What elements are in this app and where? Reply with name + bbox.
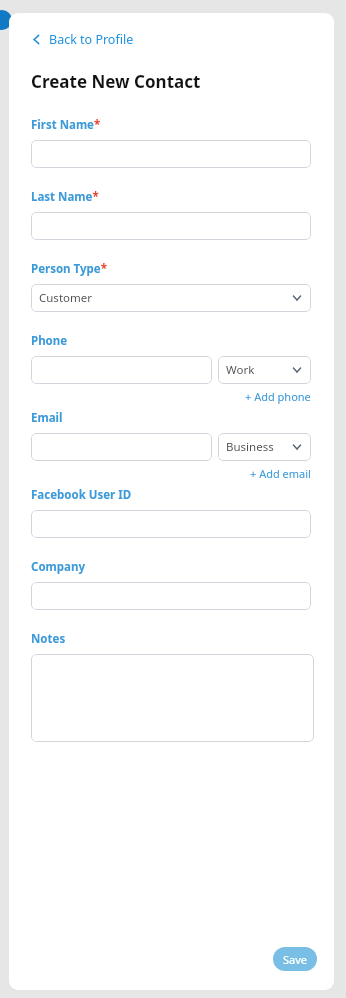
button[interactable]: Text input — [31, 654, 314, 742]
button[interactable]: Text input — [31, 212, 311, 240]
staticText: Business — [226, 439, 274, 455]
button[interactable]: + Add phone — [245, 388, 311, 405]
staticText: Email — [31, 410, 63, 426]
staticText: Person Type* — [31, 261, 107, 277]
staticText: Save — [283, 952, 308, 967]
staticText: Create New Contact — [31, 70, 201, 93]
button[interactable]: Back to Profile — [27, 27, 138, 52]
button[interactable]: Business — [218, 433, 311, 461]
button[interactable]: Text input — [31, 582, 311, 610]
button[interactable]: Text input — [31, 433, 212, 461]
staticText: Notes — [31, 631, 66, 647]
staticText: Facebook User ID — [31, 487, 132, 503]
staticText: + Add email — [250, 466, 311, 481]
staticText: Customer — [39, 290, 92, 306]
button[interactable]: Text input — [31, 140, 311, 168]
button[interactable]: Save — [273, 947, 317, 971]
button[interactable]: + Add email — [250, 465, 311, 482]
button[interactable]: Text input — [31, 510, 311, 538]
staticText: Company — [31, 559, 85, 575]
button[interactable]: Customer — [31, 284, 311, 312]
staticText: Last Name* — [31, 189, 99, 205]
staticText: + Add phone — [245, 389, 311, 404]
staticText: First Name* — [31, 117, 101, 133]
button[interactable]: Text input — [31, 356, 212, 384]
button[interactable]: Work — [218, 356, 311, 384]
staticText: Back to Profile — [49, 31, 134, 48]
staticText: Work — [226, 362, 255, 378]
staticText: Phone — [31, 333, 68, 349]
